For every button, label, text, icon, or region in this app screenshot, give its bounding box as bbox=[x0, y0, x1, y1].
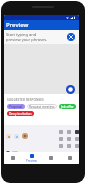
button[interactable]: Phrases bbox=[4, 152, 22, 164]
staticText: Preview bbox=[26, 159, 37, 163]
button[interactable]: Request meeting bbox=[27, 104, 57, 109]
button[interactable]: Deny invitation bbox=[7, 111, 34, 116]
button[interactable]: Preview bbox=[22, 152, 41, 164]
button[interactable]: Library bbox=[41, 152, 60, 164]
staticText: Job offer bbox=[61, 105, 74, 109]
button[interactable]: Sticker bbox=[6, 134, 11, 139]
staticText: Preview bbox=[6, 21, 29, 29]
staticText: Start typing and preview your phrases. bbox=[6, 32, 48, 42]
staticText: SUGGESTED RESPONSES bbox=[7, 98, 44, 102]
button[interactable]: GIF bbox=[14, 134, 19, 139]
staticText: Proposal bbox=[9, 105, 23, 109]
button[interactable]: Settings bbox=[60, 152, 79, 164]
staticText: ABC bbox=[12, 151, 18, 155]
button[interactable]: Job offer bbox=[59, 104, 76, 109]
button[interactable]: Proposal bbox=[7, 104, 25, 109]
staticText: Request meeting bbox=[29, 105, 55, 109]
button[interactable]: Dismiss bbox=[67, 33, 75, 41]
staticText: Deny invitation bbox=[9, 112, 32, 116]
button[interactable]: Play phrase bbox=[66, 85, 75, 94]
button[interactable]: Emoji bbox=[22, 133, 28, 139]
